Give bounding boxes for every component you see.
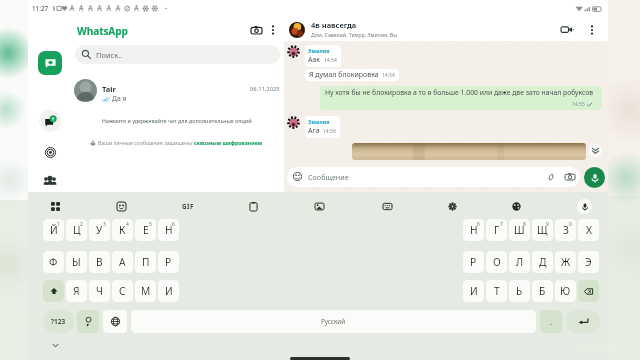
- button[interactable]: Е: [135, 219, 156, 241]
- button[interactable]: Русский: [131, 310, 536, 333]
- button[interactable]: Поиск..: [75, 45, 280, 64]
- button[interactable]: Э: [578, 251, 599, 273]
- button[interactable]: Й: [43, 219, 64, 241]
- staticText: Tair: [102, 84, 116, 94]
- button[interactable]: И: [158, 280, 179, 302]
- staticText: У: [96, 223, 103, 237]
- button[interactable]: П: [135, 251, 156, 273]
- staticText: Русский: [321, 317, 346, 326]
- button[interactable]: Сообщение: [287, 167, 580, 187]
- button[interactable]: Backspace: [578, 280, 599, 302]
- button[interactable]: Ч: [89, 280, 110, 302]
- button[interactable]: Б: [532, 280, 553, 302]
- button[interactable]: Camera: [564, 171, 575, 182]
- staticText: Щ: [537, 223, 548, 237]
- button[interactable]: Status: [39, 110, 61, 132]
- button[interactable]: More options: [265, 22, 280, 37]
- button[interactable]: Эмилия: [305, 116, 340, 138]
- button[interactable]: Chats: [38, 51, 62, 75]
- button[interactable]: Scroll to bottom: [589, 144, 602, 157]
- button[interactable]: Emoji and comma: [77, 310, 99, 333]
- button[interactable]: Video call: [559, 21, 576, 38]
- button[interactable]: Т: [486, 280, 507, 302]
- staticText: 0: [569, 221, 572, 228]
- button[interactable]: Communities: [39, 170, 61, 192]
- button[interactable]: Voice input: [577, 199, 592, 214]
- button[interactable]: Settings: [446, 200, 459, 213]
- button[interactable]: Apps: [49, 200, 62, 213]
- staticText: И: [165, 284, 173, 298]
- button[interactable]: Р: [158, 251, 179, 273]
- staticText: Ю: [560, 284, 571, 298]
- button[interactable]: Ф: [43, 251, 64, 273]
- button[interactable]: Ц: [66, 219, 87, 241]
- button[interactable]: А: [112, 251, 133, 273]
- button[interactable]: Щ: [532, 219, 553, 241]
- staticText: Поиск..: [96, 50, 123, 60]
- button[interactable]: Я: [66, 280, 87, 302]
- button[interactable]: Р: [463, 251, 484, 273]
- button[interactable]: К: [112, 219, 133, 241]
- button[interactable]: More options: [584, 22, 599, 37]
- button[interactable]: У: [89, 219, 110, 241]
- button[interactable]: Camera: [247, 21, 265, 39]
- staticText: Б: [539, 284, 546, 298]
- staticText: Л: [516, 255, 524, 269]
- button[interactable]: Hide keyboard: [50, 340, 60, 350]
- button[interactable]: Period: [540, 310, 562, 333]
- button[interactable]: С: [112, 280, 133, 302]
- staticText: З: [563, 223, 569, 237]
- button[interactable]: ?123: [43, 310, 74, 333]
- staticText: Я думал блокировка: [309, 70, 379, 80]
- button[interactable]: Ы: [66, 251, 87, 273]
- button[interactable]: Н: [158, 219, 179, 241]
- staticText: Эмилия: [308, 118, 330, 125]
- button[interactable]: Ж: [555, 251, 576, 273]
- button[interactable]: И: [463, 280, 484, 302]
- staticText: Э: [585, 255, 592, 269]
- button[interactable]: Н: [463, 219, 484, 241]
- button[interactable]: Л: [509, 251, 530, 273]
- staticText: 1: [57, 221, 60, 228]
- staticText: Ф: [49, 255, 58, 269]
- button[interactable]: Ну хотя бы не блокировка а то я больше 1…: [320, 86, 602, 110]
- staticText: WhatsApp: [77, 24, 128, 38]
- button[interactable]: Ю: [555, 280, 576, 302]
- button[interactable]: Ь: [509, 280, 530, 302]
- button[interactable]: Voice message: [584, 167, 605, 188]
- staticText: Я: [73, 284, 80, 298]
- button[interactable]: Enter: [566, 310, 600, 333]
- staticText: Ч: [96, 284, 103, 298]
- staticText: Ваши личные сообщения защищены: [98, 139, 194, 146]
- staticText: 3: [103, 221, 106, 228]
- button[interactable]: Х: [578, 219, 599, 241]
- staticText: Ы: [72, 255, 81, 269]
- button[interactable]: В: [89, 251, 110, 273]
- button[interactable]: Г: [486, 219, 507, 241]
- button[interactable]: Ш: [509, 219, 530, 241]
- button[interactable]: М: [135, 280, 156, 302]
- button[interactable]: Images: [313, 200, 326, 213]
- staticText: П: [142, 255, 150, 269]
- button[interactable]: Keyboard layout: [381, 200, 394, 213]
- button[interactable]: Clipboard: [247, 200, 260, 213]
- button[interactable]: Theme: [510, 200, 523, 213]
- staticText: 14:54: [324, 57, 337, 64]
- staticText: Эмилия: [308, 47, 330, 54]
- staticText: 4в навсегда: [311, 20, 357, 30]
- button[interactable]: Stickers: [115, 200, 128, 213]
- button[interactable]: Channels: [39, 141, 61, 163]
- button[interactable]: Attach: [545, 171, 556, 182]
- button[interactable]: Change language: [103, 310, 127, 333]
- button[interactable]: З: [555, 219, 576, 241]
- button[interactable]: О: [486, 251, 507, 273]
- staticText: Сообщение: [308, 172, 349, 182]
- button[interactable]: Эмилия: [305, 45, 341, 67]
- staticText: Ц: [73, 223, 81, 237]
- button[interactable]: Д: [532, 251, 553, 273]
- staticText: ?123: [51, 317, 66, 326]
- button[interactable]: Shift: [43, 280, 64, 302]
- button[interactable]: Я думал блокировка: [305, 69, 399, 81]
- button[interactable]: GIF: [179, 201, 196, 211]
